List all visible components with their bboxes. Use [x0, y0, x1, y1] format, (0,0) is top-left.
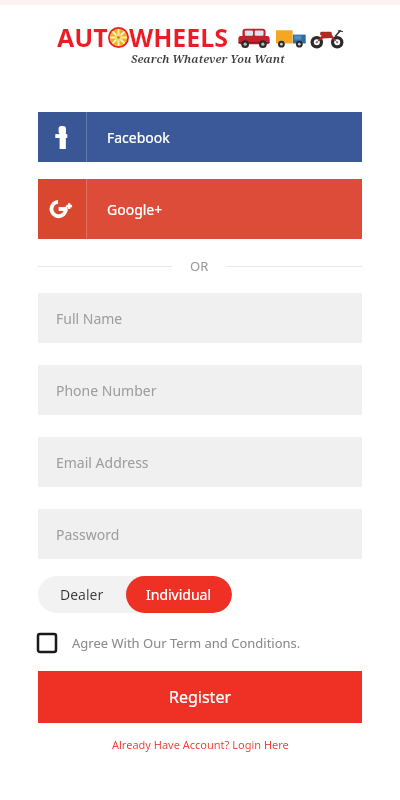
button[interactable]: Register	[38, 671, 362, 723]
button[interactable]: Individual	[126, 576, 232, 613]
staticText: Password	[56, 525, 120, 544]
button[interactable]: Password	[38, 509, 362, 559]
staticText: Full Name	[56, 309, 123, 328]
button[interactable]: Email Address	[38, 437, 362, 487]
button[interactable]: Already Have Account? Login Here	[0, 737, 400, 752]
staticText: Google+	[107, 200, 163, 219]
staticText: Register	[169, 686, 232, 708]
button[interactable]: Dealer	[38, 576, 126, 613]
staticText: Search Whatever You Want	[131, 51, 285, 66]
staticText: WHEELS	[129, 20, 229, 54]
staticText: Already Have Account? Login Here	[112, 737, 289, 752]
staticText: OR	[190, 257, 209, 275]
button[interactable]: Phone Number	[38, 365, 362, 415]
staticText: Phone Number	[56, 381, 157, 400]
staticText: Agree With Our Term and Conditions.	[72, 634, 301, 652]
staticText: Individual	[146, 585, 212, 604]
staticText: Facebook	[107, 128, 170, 147]
button[interactable]: Sign in with Facebook	[38, 112, 362, 162]
staticText: AUT	[57, 20, 108, 54]
button[interactable]: Agree With Our Term and Conditions.	[38, 634, 362, 652]
staticText: Dealer	[60, 585, 104, 604]
staticText: Email Address	[56, 453, 149, 472]
button[interactable]: Sign in with Google Plus	[38, 179, 362, 239]
button[interactable]: Full Name	[38, 293, 362, 343]
